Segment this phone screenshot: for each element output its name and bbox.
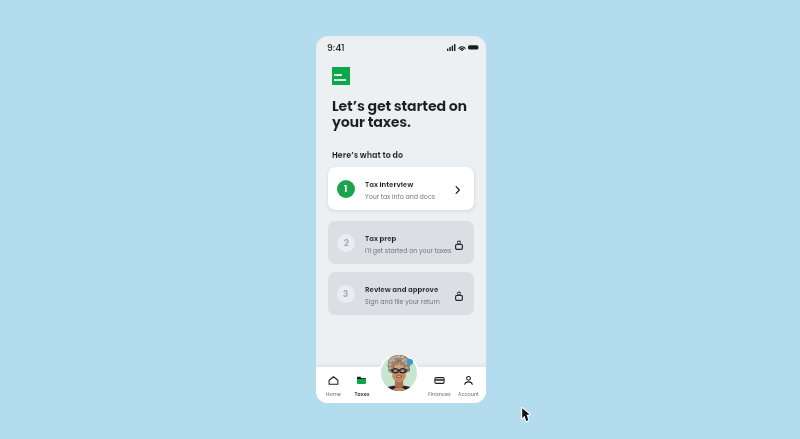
staticText: Let’s get started on your taxes. — [332, 96, 467, 132]
button[interactable]: Account — [456, 375, 481, 398]
button[interactable]: Profile — [379, 355, 419, 391]
staticText: Review and approve — [365, 285, 439, 295]
button[interactable]: 1 — [328, 167, 474, 210]
button[interactable]: 2 — [328, 221, 474, 264]
staticText: Account — [458, 391, 479, 398]
staticText: 9:41 — [327, 41, 345, 54]
staticText: 3 — [343, 288, 349, 300]
other: Locked — [455, 240, 463, 250]
staticText: Taxes — [354, 391, 370, 398]
staticText: Your tax info and docs — [365, 192, 435, 201]
button[interactable]: 3 — [328, 272, 474, 315]
staticText: Tax interview — [365, 180, 414, 190]
staticText: Home — [326, 391, 341, 398]
button[interactable]: Finances — [427, 375, 452, 398]
other: Open tax interview — [454, 185, 462, 195]
staticText: Tax prep — [365, 234, 397, 244]
staticText: Sign and file your return — [365, 297, 440, 306]
staticText: 1 — [344, 183, 348, 195]
staticText: H&R — [334, 72, 342, 77]
other: Locked — [455, 291, 463, 301]
staticText: Finances — [428, 391, 451, 398]
staticText: 2 — [344, 237, 349, 249]
staticText: Here’s what to do — [332, 150, 404, 161]
staticText: I’ll get started on your taxes — [365, 246, 452, 255]
button[interactable]: Home — [321, 375, 346, 398]
button[interactable]: Taxes — [349, 375, 374, 398]
staticText: BLOCK — [334, 77, 347, 82]
